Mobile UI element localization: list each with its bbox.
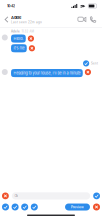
button[interactable]: Cancel recording (2, 192, 9, 199)
button[interactable]: Camera (2, 203, 9, 210)
staticText: Sent (91, 62, 98, 65)
button[interactable]: Back (2, 14, 11, 25)
staticText: Hello. (13, 36, 23, 41)
staticText: Ok (14, 194, 18, 198)
button[interactable]: Video call (77, 14, 87, 25)
button[interactable]: Voice call (89, 14, 97, 25)
button[interactable]: More (31, 203, 38, 210)
staticText: Preview (71, 205, 84, 209)
button[interactable]: Photos (21, 203, 28, 210)
staticText: Adele (11, 15, 21, 20)
button[interactable]: Contact (12, 203, 19, 210)
button[interactable]: Preview (65, 203, 90, 210)
staticText: Adele (11, 30, 20, 33)
staticText: It's me (13, 46, 24, 50)
staticText: Heading to your house, I'll be in a minu… (13, 71, 80, 75)
staticText: 10:42 (7, 4, 15, 8)
button[interactable]: Send (93, 192, 100, 199)
button[interactable]: Close (93, 203, 100, 210)
staticText: Last seen 22m ago (11, 20, 42, 24)
staticText: 11:32 AM (22, 30, 35, 33)
